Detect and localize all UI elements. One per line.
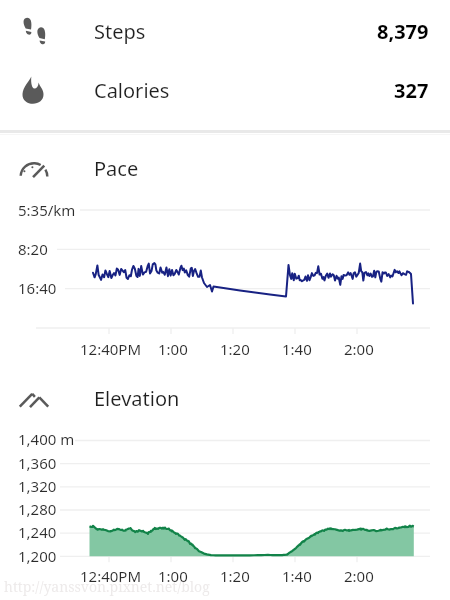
- staticText: 1:40: [282, 566, 312, 586]
- staticText: 1:00: [158, 566, 188, 586]
- button[interactable]: Calories: [0, 61, 450, 120]
- staticText: 1,240: [18, 522, 57, 542]
- other: Pace: [17, 158, 49, 190]
- staticText: 5:35/km: [18, 200, 76, 220]
- staticText: 1:20: [220, 566, 250, 586]
- staticText: 12:40PM: [80, 339, 142, 359]
- staticText: 12:40PM: [80, 566, 142, 586]
- staticText: Pace: [94, 155, 139, 182]
- staticText: 1,400 m: [18, 429, 75, 449]
- staticText: 1:00: [158, 339, 188, 359]
- staticText: 1:20: [220, 339, 250, 359]
- staticText: 2:00: [344, 566, 374, 586]
- staticText: 327: [394, 77, 429, 104]
- other: Elevation: [17, 383, 49, 415]
- staticText: Calories: [94, 77, 170, 104]
- staticText: 8:20: [18, 239, 48, 259]
- staticText: 1,280: [18, 499, 57, 519]
- staticText: 8,379: [377, 18, 429, 45]
- staticText: http://yanssvon.pixnet.net/blog: [4, 577, 210, 596]
- staticText: Elevation: [94, 385, 180, 412]
- button[interactable]: Steps: [0, 2, 450, 61]
- staticText: 1,320: [18, 476, 57, 496]
- staticText: 1,360: [18, 453, 57, 473]
- staticText: 2:00: [344, 339, 374, 359]
- staticText: 16:40: [18, 278, 57, 298]
- staticText: Steps: [94, 18, 146, 45]
- staticText: 1,200: [18, 546, 57, 566]
- staticText: 1:40: [282, 339, 312, 359]
